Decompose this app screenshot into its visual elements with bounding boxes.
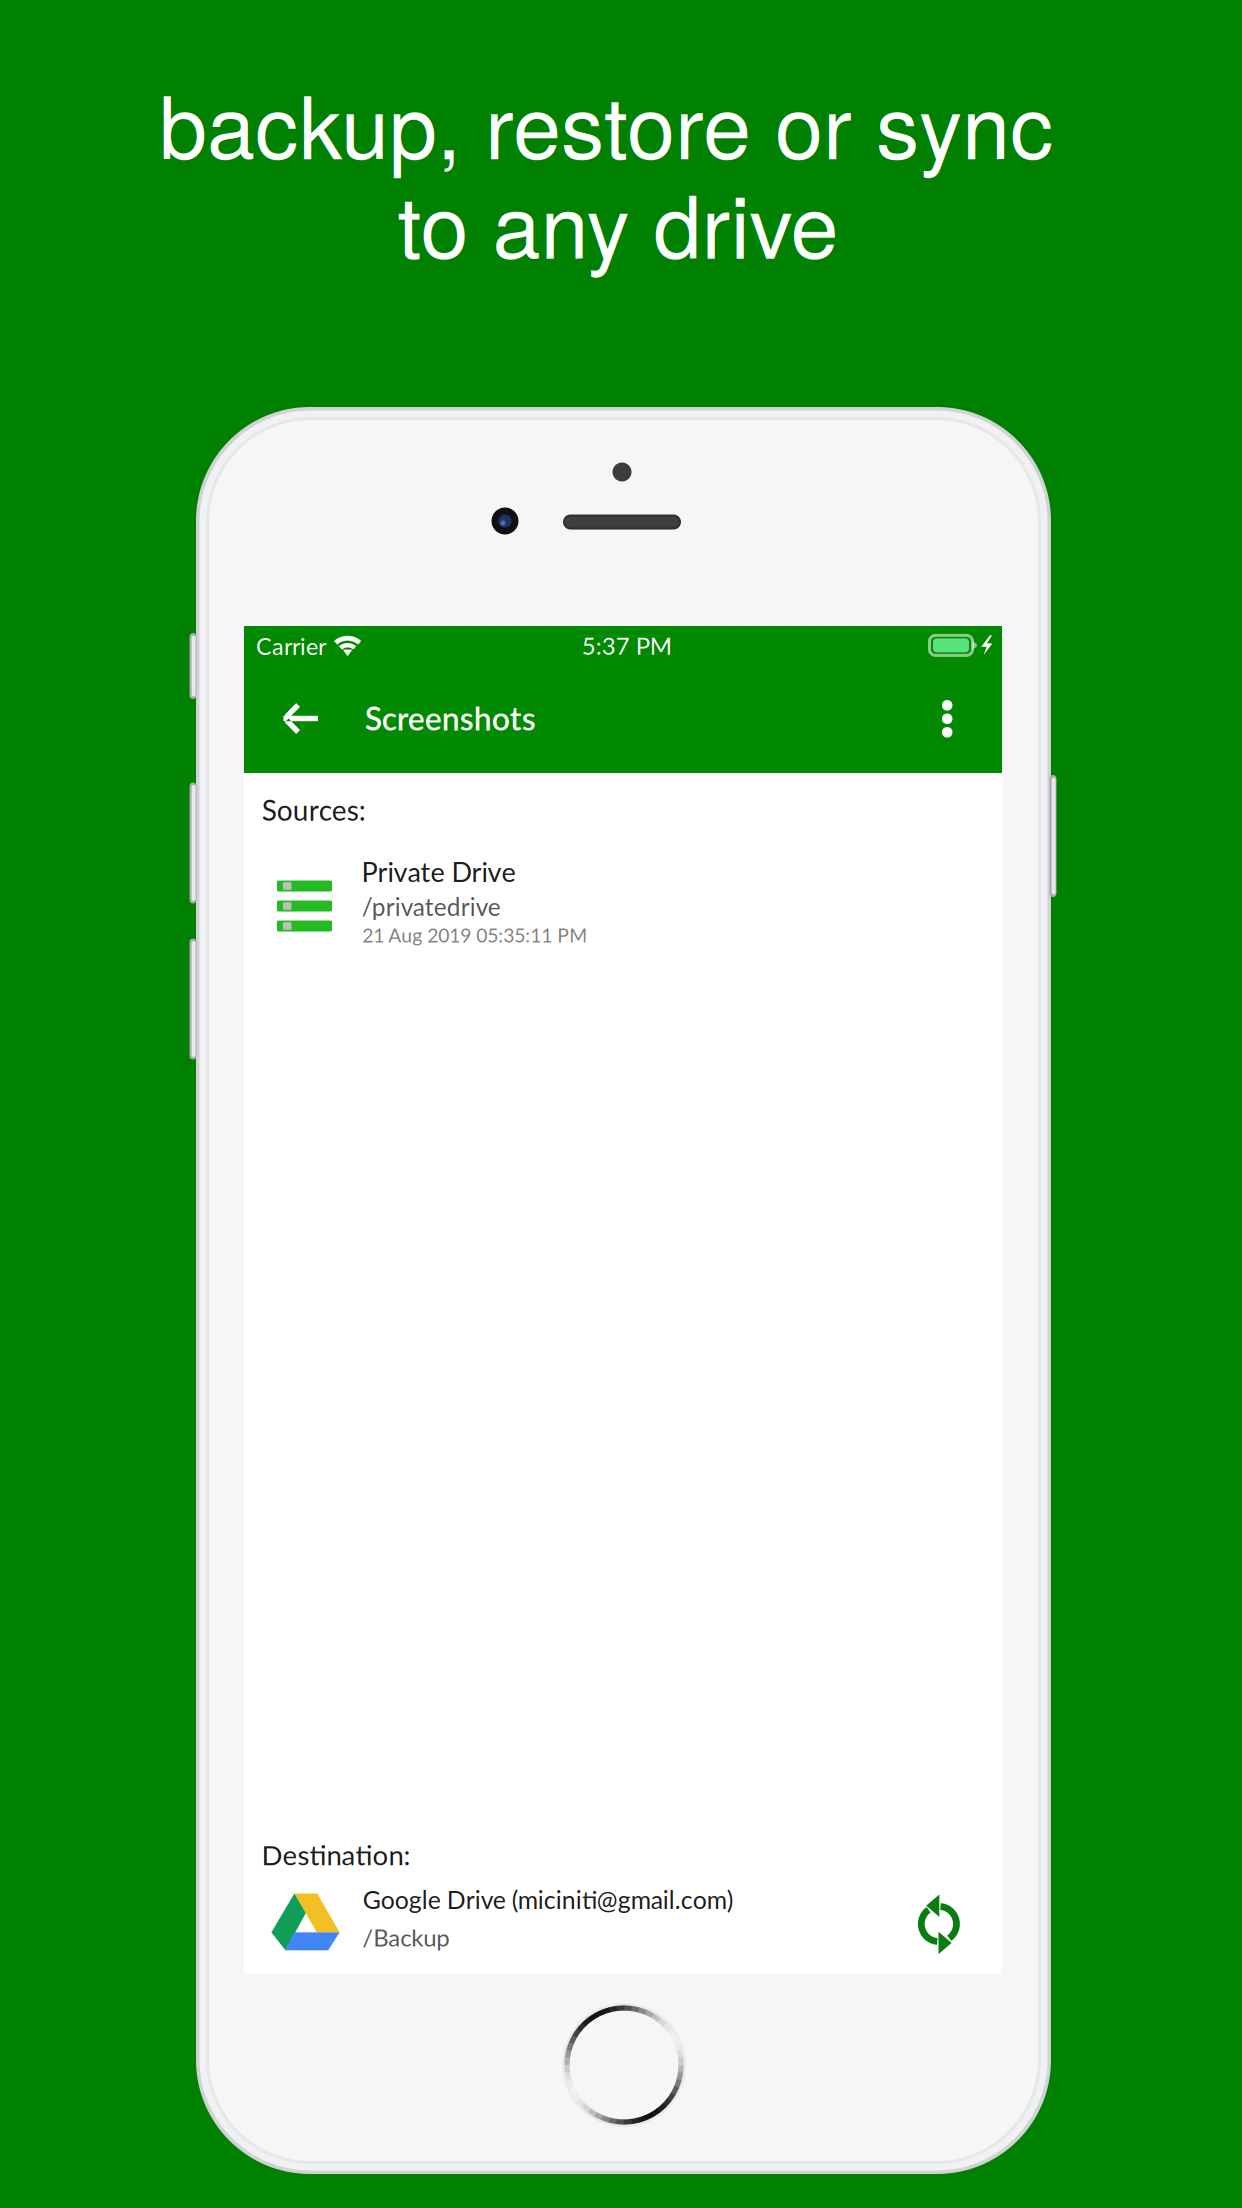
staticText: to any drive: [397, 160, 838, 283]
staticText: /privatedrive: [362, 892, 501, 921]
staticText: Carrier: [256, 632, 326, 660]
staticText: 5:37 PM: [582, 631, 672, 660]
staticText: /Backup: [362, 1923, 449, 1952]
staticText: Destination:: [261, 1838, 410, 1871]
button[interactable]: Back: [256, 671, 342, 765]
staticText: 21 Aug 2019 05:35:11 PM: [362, 923, 587, 947]
staticText: Private Drive: [361, 855, 515, 888]
button[interactable]: Private Drive: [263, 846, 963, 966]
staticText: Screenshots: [365, 699, 536, 737]
staticText: backup, restore or sync: [159, 60, 1053, 184]
button[interactable]: More options: [904, 672, 990, 766]
staticText: Sources:: [262, 793, 366, 827]
staticText: Google Drive (miciniti@gmail.com): [363, 1885, 734, 1914]
button[interactable]: Google Drive (miciniti@gmail.com): [253, 1865, 993, 1959]
